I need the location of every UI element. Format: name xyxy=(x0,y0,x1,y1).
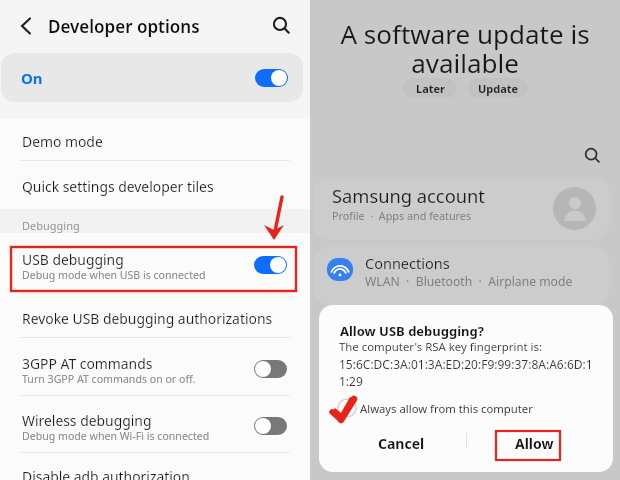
button[interactable]: On xyxy=(254,256,287,274)
staticText: Demo mode xyxy=(22,132,103,151)
staticText: Update xyxy=(478,81,519,96)
staticText: WLAN · Bluetooth · Airplane mode xyxy=(365,273,573,290)
button[interactable]: Wireless debugging xyxy=(0,402,310,450)
staticText: On xyxy=(21,68,43,88)
staticText: Samsung account xyxy=(332,183,485,208)
staticText: Profile · Apps and features xyxy=(332,208,472,223)
staticText: Disable adb authorization xyxy=(22,467,190,480)
staticText: Debug mode when Wi-Fi is connected xyxy=(22,429,210,443)
button[interactable]: Samsung account xyxy=(314,177,609,240)
staticText: Wireless debugging xyxy=(22,411,152,430)
staticText: Debugging xyxy=(22,218,80,233)
staticText: 1:29 xyxy=(339,373,363,389)
staticText: Debug mode when USB is connected xyxy=(22,268,206,282)
staticText: Always allow from this computer xyxy=(360,401,533,416)
staticText: Allow xyxy=(515,434,554,453)
staticText: Developer options xyxy=(48,15,200,38)
button[interactable]: Back xyxy=(6,6,46,46)
button[interactable]: Demo mode xyxy=(0,123,310,165)
button[interactable]: Update xyxy=(468,78,528,98)
button[interactable]: Search xyxy=(578,141,606,169)
staticText: The computer's RSA key fingerprint is: xyxy=(339,339,543,355)
staticText: available xyxy=(310,45,620,80)
staticText: Quick settings developer tiles xyxy=(22,177,214,196)
staticText: USB debugging xyxy=(22,250,124,269)
button[interactable]: Search xyxy=(263,7,299,43)
button[interactable]: USB debugging xyxy=(0,241,310,289)
button[interactable]: Off xyxy=(254,360,287,378)
staticText: Revoke USB debugging authorizations xyxy=(22,309,273,328)
button[interactable]: Later xyxy=(403,78,457,98)
staticText: Later xyxy=(416,81,445,96)
button[interactable]: Revoke USB debugging authorizations xyxy=(0,300,310,342)
button[interactable]: Connections xyxy=(314,247,609,305)
button[interactable]: On xyxy=(1,53,303,102)
staticText: Connections xyxy=(365,253,450,273)
staticText: 15:6C:DC:3A:01:3A:ED:20:F9:99:37:8A:A6:6… xyxy=(339,356,593,372)
button[interactable]: Allow xyxy=(474,427,594,459)
staticText: A software update is xyxy=(310,16,620,51)
button[interactable]: On xyxy=(255,69,288,87)
staticText: Allow USB debugging? xyxy=(340,322,484,340)
button[interactable]: Quick settings developer tiles xyxy=(0,168,310,210)
button[interactable]: Off xyxy=(254,417,287,435)
staticText: Cancel xyxy=(378,434,425,453)
button[interactable]: Disable adb authorization xyxy=(0,458,310,480)
staticText: Turn 3GPP AT commands on or off. xyxy=(22,372,196,386)
staticText: 3GPP AT commands xyxy=(22,354,153,373)
button[interactable]: 3GPP AT commands xyxy=(0,345,310,393)
button[interactable]: Cancel xyxy=(341,427,461,459)
